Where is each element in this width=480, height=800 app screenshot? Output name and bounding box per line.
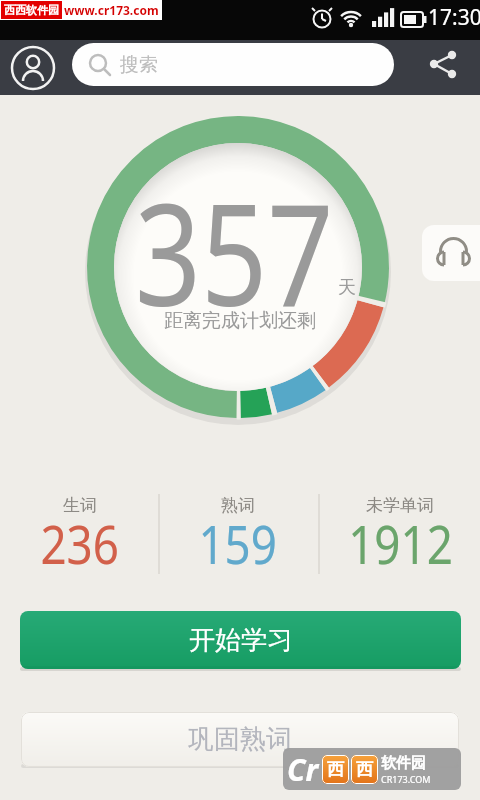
staticText: 软件园 <box>381 754 426 773</box>
button[interactable]: 搜索 <box>72 43 394 86</box>
staticText: 生词 <box>63 495 97 516</box>
staticText: 天 <box>338 276 356 299</box>
staticText: 熟词 <box>221 495 255 516</box>
staticText: 1912 <box>348 508 453 578</box>
staticText: 17:30 <box>428 3 480 32</box>
button[interactable] <box>429 50 461 82</box>
button[interactable] <box>422 225 480 281</box>
staticText: CR173.COM <box>381 773 431 785</box>
button[interactable] <box>10 45 56 91</box>
staticText: 357 <box>135 156 334 347</box>
staticText: 西 <box>327 759 344 780</box>
staticText: 距离完成计划还剩 <box>164 309 316 333</box>
button[interactable]: 巩固熟词 <box>21 712 459 767</box>
staticText: 159 <box>198 508 278 578</box>
staticText: Cr <box>287 749 319 790</box>
staticText: 未学单词 <box>366 495 434 516</box>
staticText: 搜索 <box>120 53 158 77</box>
staticText: 236 <box>40 508 120 578</box>
staticText: 西 <box>356 759 373 780</box>
staticText: 西西软件园 <box>4 3 59 17</box>
staticText: 巩固熟词 <box>188 723 292 756</box>
button[interactable]: 开始学习 <box>20 611 461 669</box>
staticText: www.cr173.com <box>64 2 159 18</box>
staticText: 开始学习 <box>189 624 293 657</box>
